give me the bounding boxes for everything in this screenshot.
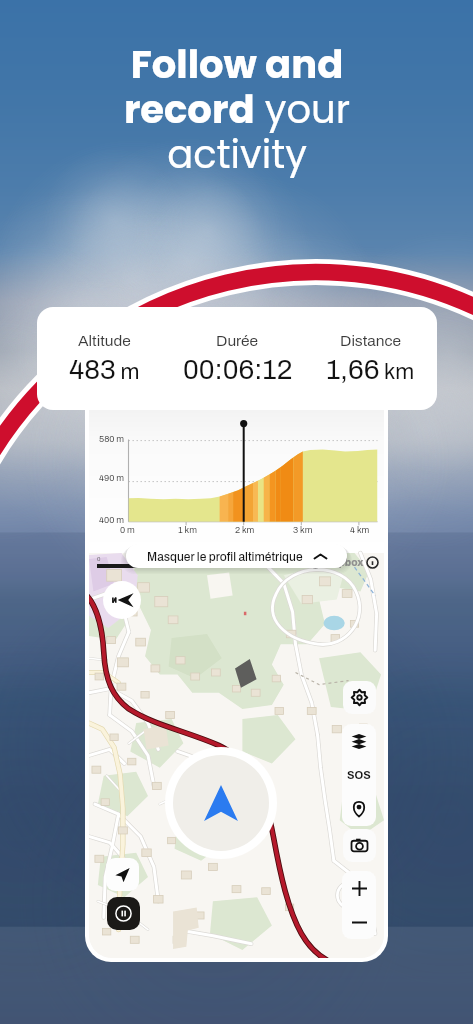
staticText: 0 m [120, 525, 135, 535]
staticText: Altitude [78, 332, 131, 349]
staticText: SOS [347, 769, 371, 781]
button[interactable]: Camera [343, 829, 376, 862]
staticText: 4 km [350, 525, 370, 535]
staticText: 580 m [99, 434, 125, 444]
button[interactable]: Zoom in [342, 871, 376, 905]
button[interactable]: Recenter [106, 858, 139, 891]
staticText: Durée [216, 332, 259, 349]
button[interactable]: SOS [342, 758, 376, 792]
staticText: 0 [97, 556, 101, 563]
staticText: Follow and record your activity [92, 38, 382, 181]
staticText: 483 m [69, 355, 140, 385]
button[interactable]: Compass [103, 581, 141, 619]
button[interactable]: Zoom out [342, 905, 376, 939]
button[interactable]: Pause [107, 897, 140, 930]
staticText: 1,66 km [326, 355, 415, 385]
button[interactable]: Masquer le profil altimétrique [126, 544, 347, 568]
staticText: Masquer le profil altimétrique [147, 550, 303, 563]
staticText: 2 km [235, 525, 255, 535]
staticText: 00:06:12 [183, 355, 293, 385]
button[interactable]: Place marker [342, 792, 376, 826]
button[interactable]: Altitude [37, 307, 437, 410]
staticText: mapbox [323, 557, 364, 568]
staticText: Distance [340, 332, 402, 349]
button[interactable]: Settings [343, 681, 376, 714]
staticText: 3 km [293, 525, 313, 535]
button[interactable]: Layers [342, 724, 376, 758]
staticText: 400 m [99, 515, 124, 525]
staticText: 150 m [171, 556, 188, 563]
staticText: 490 m [99, 473, 124, 483]
staticText: 1 km [178, 525, 197, 535]
